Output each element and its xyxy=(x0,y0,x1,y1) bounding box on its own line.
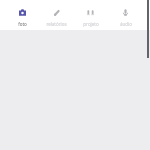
button[interactable]: Relatórios xyxy=(39,0,73,30)
staticText: relatórios xyxy=(46,21,67,27)
button[interactable]: Áudio xyxy=(108,0,143,30)
staticText: áudio xyxy=(120,21,132,27)
button[interactable]: Projeto xyxy=(73,0,108,30)
button[interactable]: Fotos xyxy=(5,0,39,30)
staticText: projeto xyxy=(83,21,99,27)
staticText: foto xyxy=(18,21,27,27)
